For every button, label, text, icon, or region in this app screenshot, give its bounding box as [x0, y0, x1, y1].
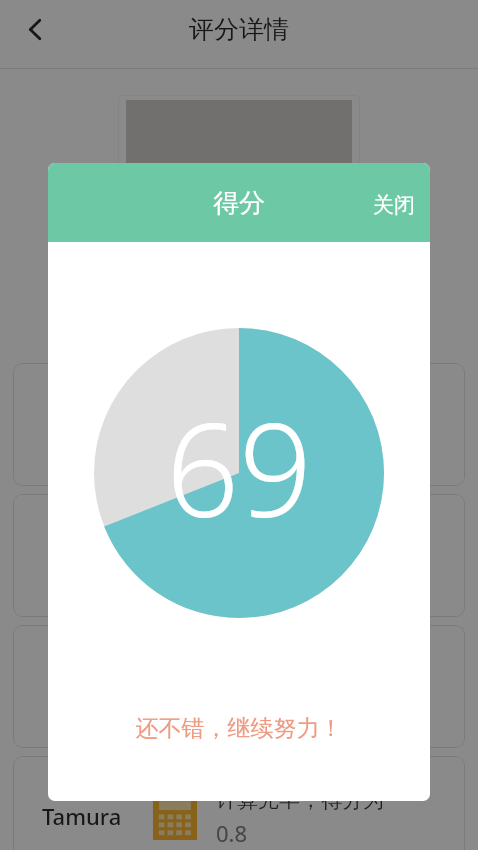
button[interactable]: 计算完毕，得分为	[13, 625, 465, 748]
staticText: 计算完毕，得分为	[216, 787, 384, 813]
staticText: 评分详情	[189, 14, 289, 45]
staticText: 0.8	[216, 818, 248, 848]
staticText: 计算完毕，得分为	[216, 525, 384, 551]
button[interactable]: Tamura	[13, 756, 465, 850]
button[interactable]: Back	[13, 7, 57, 51]
staticText: 69	[166, 380, 313, 554]
staticText: Tamura	[42, 801, 122, 831]
staticText: 0.8	[216, 425, 248, 455]
button[interactable]: 关闭	[358, 176, 430, 230]
staticText: 还不错，继续努力！	[48, 714, 430, 743]
button[interactable]: 计算完毕，得分为	[13, 363, 465, 486]
staticText: 关闭	[373, 192, 415, 218]
staticText: 计算完毕，得分为	[216, 394, 384, 420]
button[interactable]: 计算完毕，得分为	[13, 494, 465, 617]
staticText: 得分	[213, 187, 265, 220]
